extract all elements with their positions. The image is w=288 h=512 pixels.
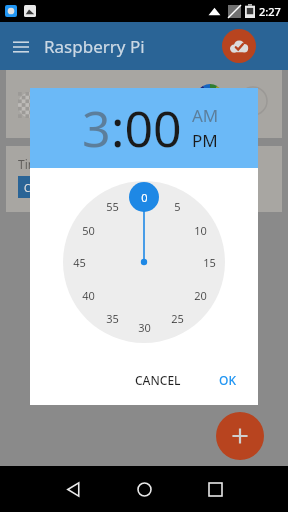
button[interactable]: 3 [82,94,111,162]
staticText: 5 [174,199,181,214]
staticText: 2:27 [259,4,281,19]
button[interactable]: AM [192,104,219,127]
staticText: 45 [73,255,86,270]
staticText: OK [219,372,236,388]
staticText: 50 [82,223,95,238]
staticText: Raspberry Pi [44,35,145,58]
button[interactable]: Menu [10,36,32,58]
button[interactable]: Home [127,472,161,506]
staticText: 30 [138,320,151,335]
button[interactable]: PM [192,129,218,152]
staticText: 10 [194,223,207,238]
staticText: CU [24,181,38,195]
button[interactable]: Sync [222,29,256,63]
staticText: 15 [203,255,216,270]
staticText: 25 [171,311,184,326]
staticText: 0 [141,190,148,205]
button[interactable]: Add [216,412,264,460]
button[interactable]: Back [56,472,90,506]
button[interactable]: CANCEL [127,366,189,394]
staticText: 55 [106,199,119,214]
staticText: 40 [82,288,95,303]
staticText: 35 [106,311,119,326]
staticText: CANCEL [135,372,181,388]
button[interactable]: Recents [198,472,232,506]
button[interactable]: OK [211,366,244,394]
staticText: 20 [194,288,207,303]
button[interactable]: :00 [111,94,182,162]
staticText: Tim [18,156,39,172]
